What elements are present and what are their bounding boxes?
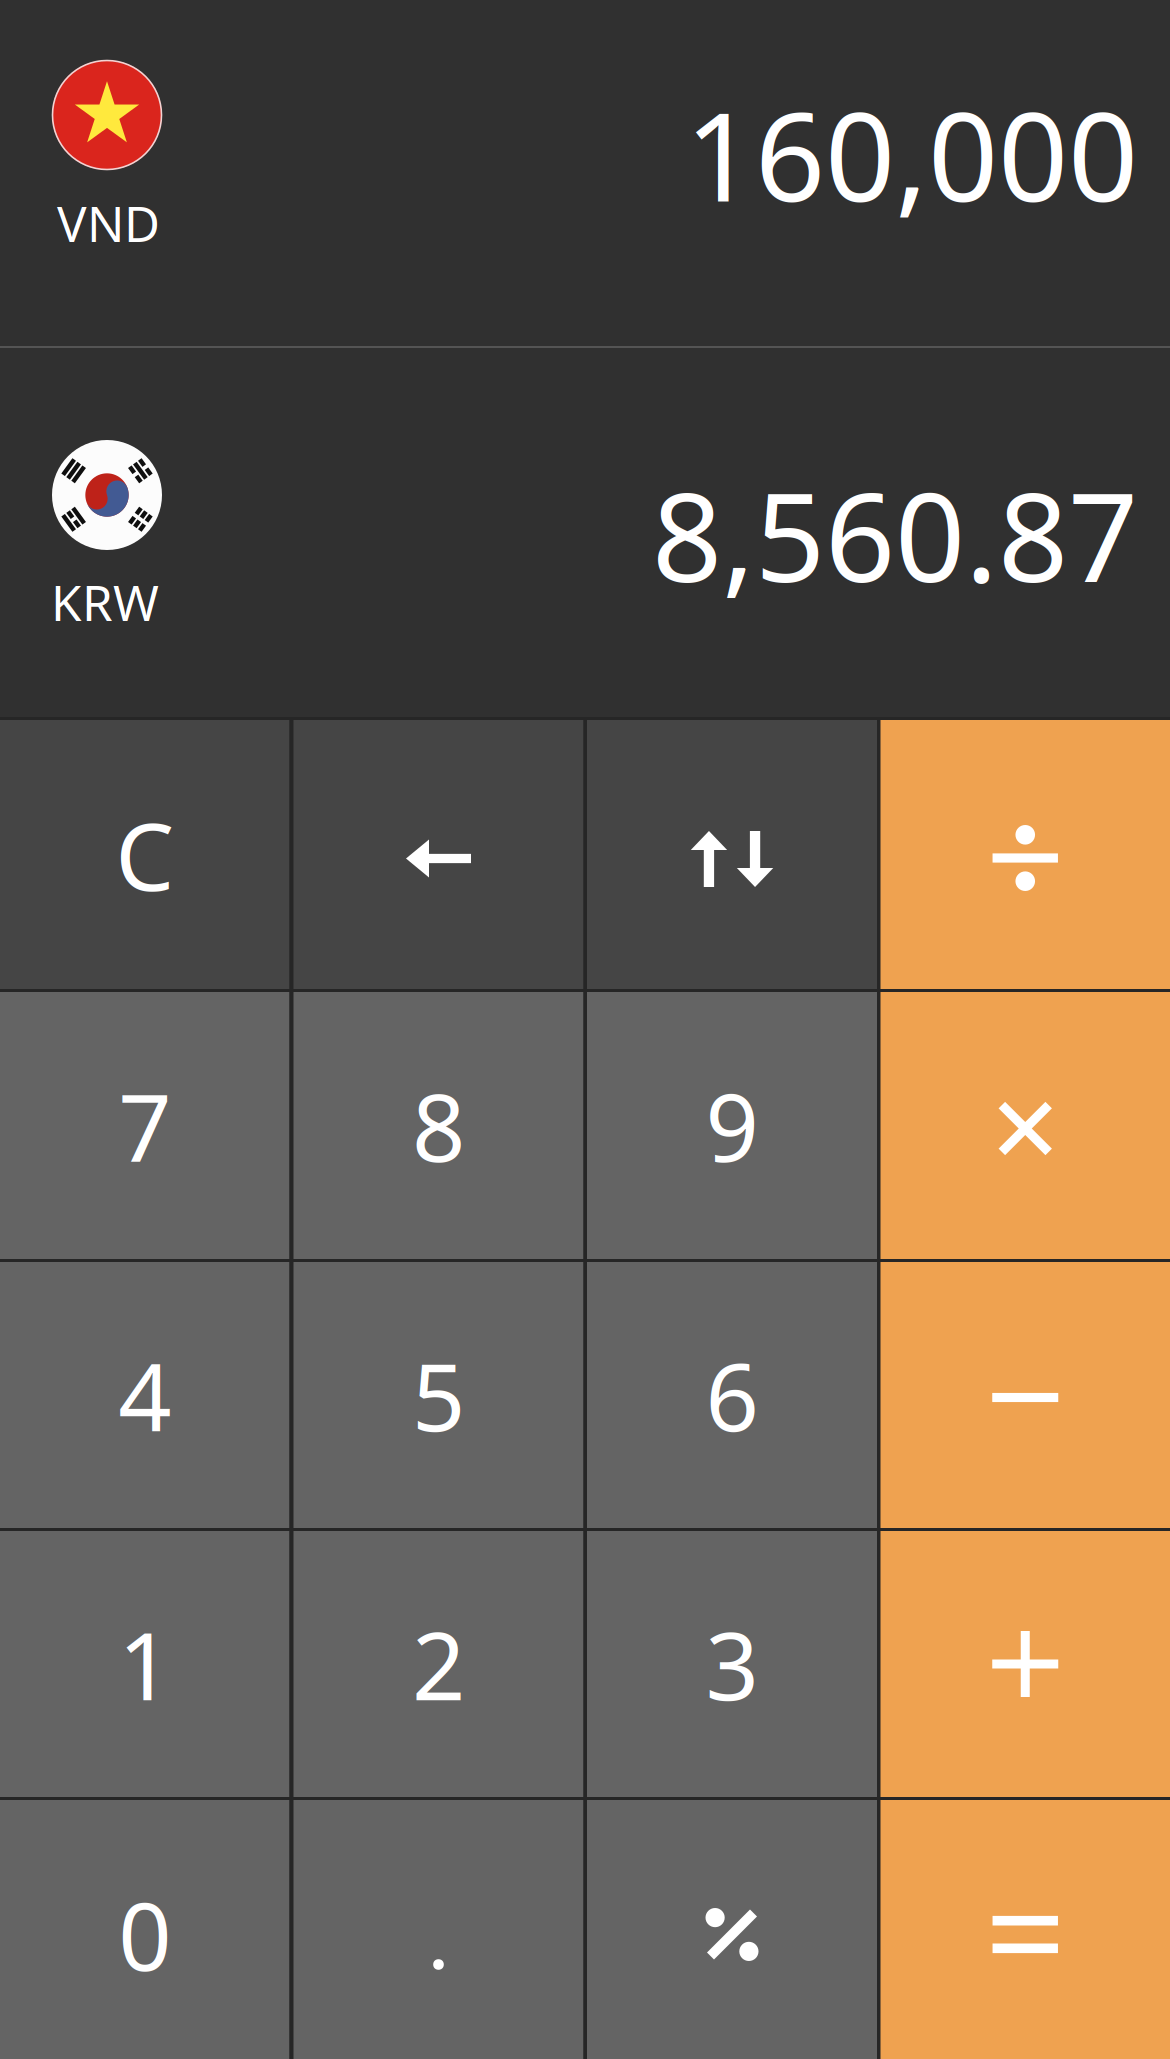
staticText: 8: [412, 1063, 465, 1187]
staticText: 0: [118, 1872, 171, 1996]
button[interactable]: VND: [0, 0, 1170, 346]
button[interactable]: 3: [587, 1531, 877, 1797]
button[interactable]: 8: [293, 992, 583, 1259]
staticText: 2: [412, 1602, 465, 1726]
button[interactable]: Equals: [880, 1800, 1170, 2059]
staticText: 6: [705, 1333, 758, 1457]
button[interactable]: Swap currencies: [587, 720, 877, 989]
button[interactable]: KRW: [0, 348, 1170, 717]
staticText: VND: [57, 190, 160, 255]
button[interactable]: Percent: [587, 1800, 877, 2059]
button[interactable]: C: [0, 720, 289, 989]
button[interactable]: Add: [880, 1531, 1170, 1797]
staticText: 3: [705, 1602, 758, 1726]
button[interactable]: Backspace: [293, 720, 583, 989]
button[interactable]: Subtract: [880, 1262, 1170, 1528]
button[interactable]: Multiply: [880, 992, 1170, 1259]
button[interactable]: 2: [293, 1531, 583, 1797]
staticText: 160,000: [685, 73, 1138, 235]
button[interactable]: 1: [0, 1531, 289, 1797]
staticText: 9: [705, 1063, 758, 1187]
staticText: 4: [118, 1333, 171, 1457]
staticText: 7: [118, 1063, 171, 1187]
staticText: KRW: [51, 569, 159, 634]
staticText: C: [115, 792, 174, 916]
button[interactable]: 4: [0, 1262, 289, 1528]
button[interactable]: 6: [587, 1262, 877, 1528]
button[interactable]: 0: [0, 1800, 289, 2059]
button[interactable]: 9: [587, 992, 877, 1259]
staticText: 8,560.87: [652, 453, 1138, 616]
staticText: 5: [412, 1333, 465, 1457]
button[interactable]: 7: [0, 992, 289, 1259]
staticText: 1: [118, 1602, 171, 1726]
button[interactable]: Divide: [880, 720, 1170, 989]
button[interactable]: 5: [293, 1262, 583, 1528]
button[interactable]: Decimal point: [293, 1800, 583, 2059]
